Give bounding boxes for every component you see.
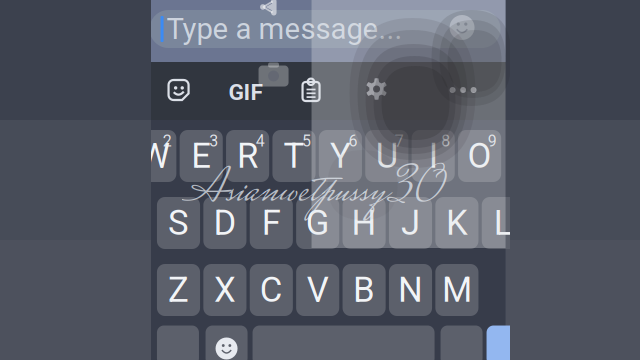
staticText: K — [446, 203, 468, 243]
button[interactable]: N — [389, 264, 432, 316]
staticText: V — [307, 270, 329, 310]
button[interactable]: Stickers — [167, 79, 189, 101]
button[interactable]: Y — [319, 130, 362, 182]
staticText: J — [401, 203, 420, 243]
staticText: W — [139, 136, 170, 176]
staticText: I — [429, 136, 438, 176]
staticText: B — [353, 270, 375, 310]
staticText: N — [398, 270, 423, 310]
button[interactable]: More — [449, 87, 476, 93]
staticText: S — [168, 203, 189, 243]
staticText: L — [494, 203, 513, 243]
staticText: T — [283, 136, 304, 176]
button[interactable]: J — [389, 197, 432, 249]
button[interactable]: Symbols — [157, 325, 199, 360]
button[interactable]: K — [435, 197, 478, 249]
button[interactable]: S — [157, 197, 200, 249]
staticText: 3 — [209, 132, 218, 150]
button[interactable]: I — [412, 130, 455, 182]
staticText: 4 — [256, 132, 265, 150]
button[interactable]: H — [342, 197, 386, 249]
staticText: X — [214, 270, 236, 310]
staticText: M — [442, 270, 472, 310]
button[interactable]: G — [296, 197, 339, 249]
button[interactable]: D — [203, 197, 246, 249]
button[interactable]: B — [342, 264, 386, 316]
staticText: GIF — [228, 79, 262, 106]
staticText: H — [352, 203, 377, 243]
staticText: 6 — [348, 132, 357, 150]
button[interactable]: F — [250, 197, 293, 249]
staticText: F — [262, 203, 281, 243]
button[interactable]: Settings — [365, 78, 387, 100]
button[interactable]: W — [133, 130, 176, 182]
staticText: E — [191, 136, 211, 176]
staticText: 7 — [395, 132, 404, 150]
staticText: 9 — [488, 132, 497, 150]
button[interactable]: Send — [486, 325, 528, 360]
staticText: G — [306, 203, 330, 243]
button[interactable]: O — [458, 130, 501, 182]
staticText: Y — [330, 136, 351, 176]
staticText: R — [237, 136, 258, 176]
button[interactable]: Emoji — [205, 325, 247, 360]
staticText: U — [376, 136, 398, 176]
staticText: Z — [168, 270, 189, 310]
button[interactable]: GIF — [228, 79, 262, 106]
staticText: Type a message... — [166, 12, 402, 46]
button[interactable]: Type a message... — [149, 10, 500, 48]
staticText: Asianwetpussy30 — [186, 155, 445, 230]
button[interactable]: R — [226, 130, 269, 182]
button[interactable]: X — [203, 264, 246, 316]
button[interactable]: M — [435, 264, 478, 316]
button[interactable]: U — [365, 130, 408, 182]
staticText: C — [260, 270, 283, 310]
staticText: D — [213, 203, 236, 243]
button[interactable]: T — [272, 130, 315, 182]
button[interactable]: E — [180, 130, 223, 182]
staticText: O — [468, 136, 492, 176]
staticText: 5 — [302, 132, 311, 150]
button[interactable]: L — [482, 197, 525, 249]
staticText: 2 — [163, 132, 172, 150]
button[interactable]: Period — [440, 325, 482, 360]
button[interactable]: V — [296, 264, 339, 316]
button[interactable]: Z — [157, 264, 200, 316]
button[interactable]: C — [250, 264, 293, 316]
button[interactable]: Clipboard — [300, 78, 321, 103]
button[interactable]: Emoji — [449, 15, 474, 40]
staticText: 8 — [441, 132, 450, 150]
